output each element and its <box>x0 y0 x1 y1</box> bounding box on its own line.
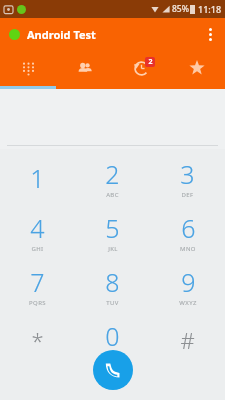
button[interactable]: 6 <box>150 205 225 259</box>
staticText: ABC <box>106 191 119 199</box>
button[interactable]: * <box>0 313 75 367</box>
staticText: # <box>180 325 195 355</box>
button[interactable]: Contacts <box>57 50 113 86</box>
button[interactable]: 9 <box>150 259 225 313</box>
staticText: GHI <box>31 245 44 253</box>
staticText: 1 <box>30 161 45 195</box>
button[interactable]: 3 <box>150 151 225 205</box>
button[interactable]: 1 <box>0 151 75 205</box>
button[interactable]: More options <box>195 19 225 49</box>
button[interactable]: 2 <box>75 151 150 205</box>
staticText: 2 <box>105 157 120 191</box>
staticText: WXYZ <box>179 299 197 307</box>
button[interactable]: Favorites <box>169 50 225 86</box>
button[interactable]: 8 <box>75 259 150 313</box>
staticText: 5 <box>105 211 120 245</box>
button[interactable]: # <box>150 313 225 367</box>
button[interactable]: 0 <box>75 313 150 367</box>
staticText: 85% <box>172 3 189 15</box>
staticText: TUV <box>106 299 119 307</box>
button[interactable]: 5 <box>75 205 150 259</box>
button[interactable]: 7 <box>0 259 75 313</box>
staticText: Android Test <box>27 27 96 42</box>
staticText: DEF <box>181 191 194 199</box>
staticText: PQRS <box>29 299 46 307</box>
staticText: MNO <box>180 245 196 253</box>
staticText: 7 <box>30 265 45 299</box>
staticText: 8 <box>105 265 120 299</box>
staticText: * <box>31 325 44 355</box>
staticText: 6 <box>181 211 196 245</box>
button[interactable]: 4 <box>0 205 75 259</box>
staticText: 3 <box>180 157 195 191</box>
staticText: 9 <box>181 265 196 299</box>
staticText: 11:18 <box>198 3 222 15</box>
staticText: 2 <box>148 57 153 67</box>
staticText: 4 <box>30 211 45 245</box>
button[interactable]: Call <box>93 350 133 390</box>
button[interactable]: Recents <box>113 50 169 86</box>
staticText: 0 <box>105 319 120 353</box>
button[interactable]: Keypad <box>0 50 57 86</box>
staticText: JKL <box>108 245 118 253</box>
